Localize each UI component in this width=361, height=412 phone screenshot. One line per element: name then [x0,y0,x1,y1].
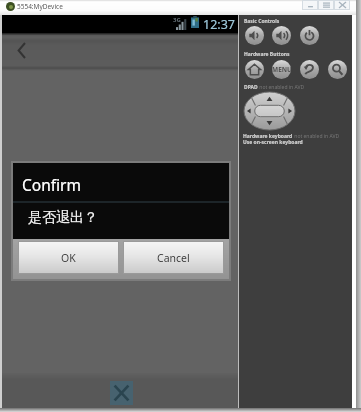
staticText: Use on-screen keyboard [243,139,303,146]
staticText: DPAD [244,84,258,91]
staticText: 12:37 [203,16,235,33]
staticText: Basic Controls [244,18,280,25]
button[interactable]: Menu [272,60,291,79]
button[interactable]: Minimize [302,0,318,10]
staticText: Confirm [22,174,81,195]
button[interactable]: Close [334,0,350,10]
staticText: OK [61,251,76,265]
button[interactable]: Close application [110,381,133,405]
button[interactable]: OK [19,242,118,273]
button[interactable]: Home [245,60,264,79]
staticText: MENU [272,65,291,74]
staticText: 5554:MyDevice [17,2,63,11]
staticText: Hardware Buttons [244,51,290,58]
button[interactable]: Volume down [245,26,264,45]
button[interactable]: Search [328,60,347,79]
staticText: not enabled in AVD [293,133,340,140]
staticText: Cancel [157,251,190,265]
staticText: not enabled in AVD [258,84,305,91]
staticText: Hardware keyboard [243,133,293,140]
button[interactable]: Power [300,26,319,45]
button[interactable]: Back [300,60,319,79]
button[interactable]: Back [8,33,34,68]
button[interactable]: Maximize [318,0,334,10]
button[interactable]: Volume up [272,26,291,45]
button[interactable]: Cancel [124,242,223,273]
staticText: 是否退出？ [28,209,98,227]
staticText: 3G [173,16,181,24]
